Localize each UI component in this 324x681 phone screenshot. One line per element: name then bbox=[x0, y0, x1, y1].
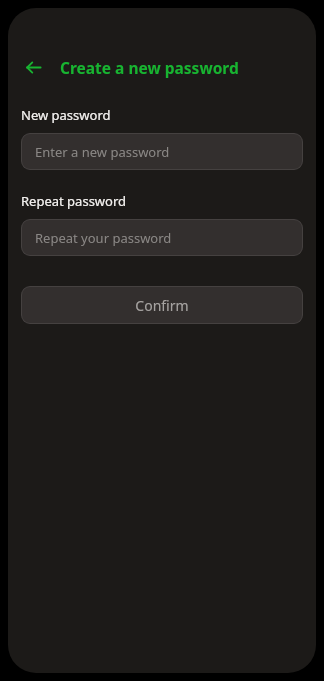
button[interactable]: Back bbox=[18, 52, 48, 82]
staticText: Confirm bbox=[135, 296, 189, 315]
staticText: Repeat your password bbox=[35, 229, 172, 247]
staticText: Create a new password bbox=[60, 57, 239, 78]
button[interactable]: Confirm bbox=[21, 286, 303, 324]
staticText: Repeat password bbox=[21, 192, 127, 210]
button[interactable]: Repeat your password bbox=[21, 219, 303, 256]
button[interactable]: Enter a new password bbox=[21, 133, 303, 170]
staticText: New password bbox=[21, 106, 111, 124]
staticText: Enter a new password bbox=[35, 143, 170, 161]
